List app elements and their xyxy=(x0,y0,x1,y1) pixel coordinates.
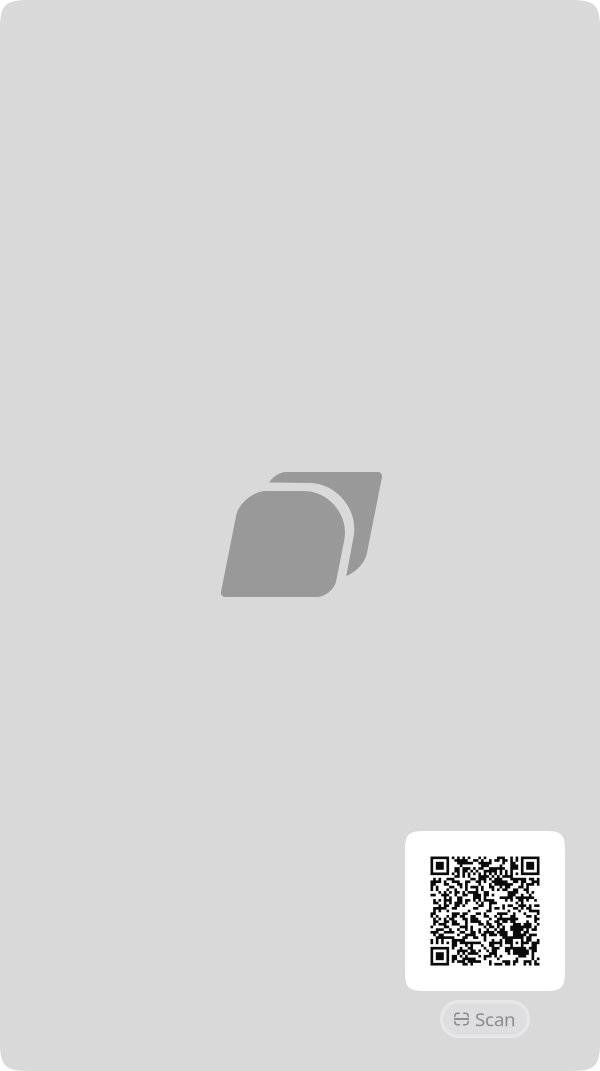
button[interactable]: My QR code xyxy=(405,831,565,991)
button[interactable]: Scan xyxy=(440,1000,530,1038)
staticText: Scan xyxy=(475,1007,516,1031)
